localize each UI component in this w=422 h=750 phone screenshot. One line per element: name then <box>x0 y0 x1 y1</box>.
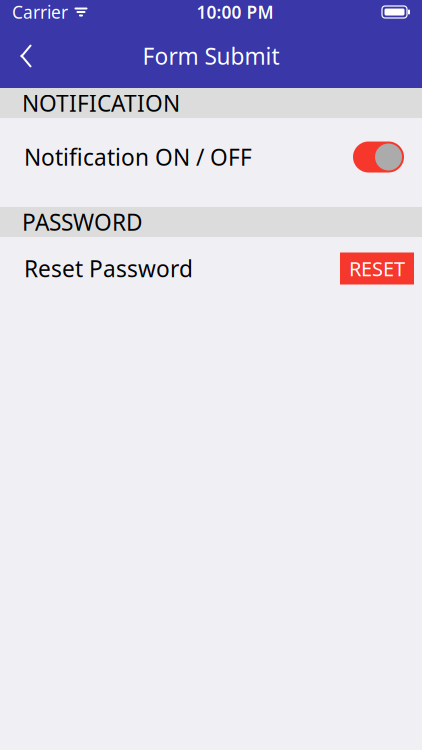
staticText: PASSWORD <box>22 207 143 237</box>
staticText: Form Submit <box>142 41 279 71</box>
staticText: NOTIFICATION <box>22 88 180 118</box>
staticText: Notification ON / OFF <box>24 142 252 172</box>
button[interactable]: Back <box>4 34 48 78</box>
staticText: Carrier <box>12 0 68 23</box>
button[interactable]: Notification ON / OFF <box>0 118 422 196</box>
staticText: RESET <box>349 255 405 282</box>
staticText: Reset Password <box>24 253 193 283</box>
staticText: 10:00 PM <box>196 0 273 23</box>
button[interactable]: RESET <box>340 252 414 284</box>
